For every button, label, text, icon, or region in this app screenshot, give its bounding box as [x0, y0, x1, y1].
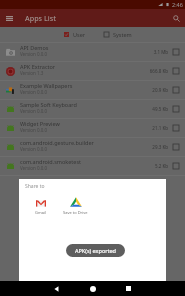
- staticText: Example Wallpapers: [20, 82, 73, 89]
- staticText: 20.9 Kb: [152, 87, 168, 93]
- staticText: 29.3 Kb: [152, 144, 168, 150]
- staticText: com.android.smoketest: [20, 158, 82, 165]
- staticText: APK(s) exported: [75, 247, 116, 254]
- staticText: Version 0.0.0: [20, 51, 48, 57]
- staticText: 3.1 Mb: [153, 49, 168, 55]
- button[interactable]: System: [104, 29, 132, 40]
- button[interactable]: Open navigation drawer: [0, 9, 19, 27]
- staticText: 21.1 Kb: [152, 125, 168, 131]
- staticText: Version 1.3: [20, 70, 44, 76]
- button[interactable]: Search: [167, 9, 185, 27]
- button[interactable]: Back: [49, 281, 64, 296]
- staticText: 49.5 Kb: [152, 106, 168, 112]
- staticText: 5.2 Kb: [154, 163, 168, 169]
- button[interactable]: APK Extractor: [0, 62, 185, 81]
- staticText: 2:46: [172, 1, 183, 8]
- staticText: APK Extractor: [20, 63, 56, 70]
- button[interactable]: Gmail: [23, 195, 58, 217]
- button[interactable]: Sample Soft Keyboard: [0, 100, 185, 119]
- staticText: 666.8 Kb: [149, 68, 168, 74]
- staticText: Sample Soft Keyboard: [20, 101, 77, 108]
- staticText: Version 0.0.0: [20, 146, 48, 152]
- button[interactable]: com.android.smoketest: [0, 157, 185, 176]
- staticText: User: [73, 31, 86, 38]
- staticText: System: [113, 31, 132, 38]
- button[interactable]: User: [64, 29, 86, 40]
- staticText: Version 0.0.0: [20, 89, 48, 95]
- staticText: com.android.gesture.builder: [20, 139, 94, 146]
- button[interactable]: Home: [85, 281, 100, 296]
- staticText: Share to: [25, 183, 45, 190]
- staticText: Version 0.0.0: [20, 165, 48, 171]
- button[interactable]: API Demos: [0, 43, 185, 62]
- staticText: API Demos: [20, 44, 49, 51]
- staticText: Widget Preview: [20, 120, 60, 127]
- button[interactable]: Widget Preview: [0, 119, 185, 138]
- staticText: Version 0.0.0: [20, 108, 48, 114]
- staticText: Version 0.0.0: [20, 127, 48, 133]
- staticText: Apps List: [25, 13, 57, 23]
- staticText: Gmail: [35, 210, 46, 215]
- button[interactable]: Recent apps: [121, 281, 136, 296]
- button[interactable]: com.android.gesture.builder: [0, 138, 185, 157]
- button[interactable]: Save to Drive: [58, 195, 93, 217]
- button[interactable]: Example Wallpapers: [0, 81, 185, 100]
- staticText: Save to Drive: [63, 210, 88, 215]
